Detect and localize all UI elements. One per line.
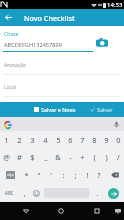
staticText: 8 bbox=[92, 135, 97, 145]
button[interactable]: Emoji bbox=[30, 184, 42, 202]
staticText: =\< bbox=[7, 172, 14, 178]
staticText: " bbox=[37, 170, 41, 180]
button[interactable]: ' bbox=[45, 166, 57, 184]
button[interactable]: 3 bbox=[26, 131, 39, 148]
button[interactable]: Back bbox=[8, 202, 43, 220]
button[interactable]: ; bbox=[69, 166, 81, 184]
staticText: ABCDEFGH132457899 bbox=[4, 41, 62, 49]
button[interactable]: 1 bbox=[0, 131, 13, 148]
button[interactable]: , bbox=[18, 184, 30, 202]
button[interactable]: 9 bbox=[100, 131, 112, 148]
button[interactable]: 2 bbox=[13, 131, 26, 148]
staticText: 2 bbox=[17, 135, 22, 145]
staticText: ABC bbox=[5, 190, 14, 196]
staticText: 1 bbox=[4, 135, 9, 145]
staticText: 3 bbox=[30, 135, 35, 145]
button[interactable]: + bbox=[76, 148, 88, 166]
button[interactable]: Salvar e Novo bbox=[32, 102, 78, 117]
button[interactable]: _ bbox=[39, 148, 52, 166]
staticText: # bbox=[17, 152, 22, 162]
button[interactable]: - bbox=[64, 148, 76, 166]
button[interactable]: ? bbox=[93, 166, 105, 184]
staticText: 6 bbox=[68, 135, 73, 145]
button[interactable]: Enter bbox=[103, 184, 124, 202]
staticText: * bbox=[24, 170, 29, 180]
button[interactable]: $ bbox=[26, 148, 39, 166]
button[interactable]: ! bbox=[81, 166, 93, 184]
staticText: ; bbox=[74, 170, 77, 180]
staticText: : bbox=[62, 170, 65, 180]
button[interactable]: Scan code bbox=[92, 32, 112, 52]
staticText: ? bbox=[97, 170, 101, 180]
staticText: 14:53 bbox=[107, 1, 123, 9]
button[interactable]: 8 bbox=[88, 131, 100, 148]
staticText: - bbox=[69, 152, 72, 162]
button[interactable]: * bbox=[20, 166, 33, 184]
button[interactable]: & bbox=[52, 148, 64, 166]
button[interactable]: Hide keyboard bbox=[114, 207, 122, 215]
staticText: / bbox=[117, 152, 120, 162]
button[interactable]: Google search bbox=[2, 119, 13, 130]
button[interactable]: Voice input bbox=[111, 119, 122, 130]
staticText: Salvar e Novo bbox=[41, 106, 76, 113]
staticText: _ bbox=[44, 152, 48, 162]
staticText: 0 bbox=[116, 135, 121, 145]
staticText: Novo Checklist bbox=[24, 13, 75, 23]
button[interactable]: 7 bbox=[76, 131, 88, 148]
button[interactable]: Salvar bbox=[88, 102, 115, 117]
staticText: 9 bbox=[104, 135, 109, 145]
button[interactable]: =\< bbox=[0, 166, 20, 184]
staticText: Chave bbox=[4, 31, 19, 38]
button[interactable]: @ bbox=[0, 148, 13, 166]
button[interactable]: 0 bbox=[112, 131, 124, 148]
button[interactable]: . bbox=[91, 184, 103, 202]
button[interactable]: Anotação bbox=[0, 59, 124, 75]
staticText: 7 bbox=[80, 135, 85, 145]
button[interactable]: Recent apps bbox=[79, 202, 115, 220]
staticText: 5 bbox=[56, 135, 61, 145]
button[interactable]: ABC bbox=[0, 184, 18, 202]
staticText: + bbox=[80, 152, 85, 162]
staticText: ! bbox=[86, 170, 89, 180]
staticText: 4 bbox=[43, 135, 48, 145]
staticText: . bbox=[96, 188, 99, 198]
button[interactable]: ) bbox=[100, 148, 112, 166]
button[interactable]: 6 bbox=[64, 131, 76, 148]
button[interactable]: 5 bbox=[52, 131, 64, 148]
staticText: Anotação bbox=[4, 62, 27, 69]
button[interactable]: / bbox=[112, 148, 124, 166]
button[interactable]: # bbox=[13, 148, 26, 166]
staticText: Local bbox=[4, 84, 17, 91]
button[interactable]: " bbox=[33, 166, 45, 184]
staticText: ' bbox=[50, 170, 52, 180]
button[interactable]: Back bbox=[2, 11, 15, 24]
staticText: ) bbox=[105, 152, 108, 162]
staticText: & bbox=[55, 152, 61, 162]
staticText: @ bbox=[3, 152, 10, 162]
button[interactable]: Backspace bbox=[105, 166, 124, 184]
button[interactable]: : bbox=[57, 166, 69, 184]
button[interactable]: Local bbox=[0, 81, 124, 97]
staticText: $ bbox=[30, 152, 35, 162]
button[interactable]: ( bbox=[88, 148, 100, 166]
button[interactable]: 4 bbox=[39, 131, 52, 148]
staticText: Salvar bbox=[97, 106, 113, 113]
button[interactable]: Home bbox=[43, 202, 79, 220]
staticText: , bbox=[23, 188, 26, 198]
staticText: ( bbox=[93, 152, 96, 162]
